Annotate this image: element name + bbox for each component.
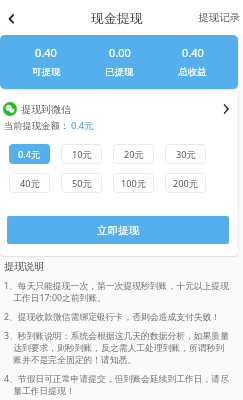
staticText: 提现说明 [4, 260, 44, 273]
staticText: 2、提现收款微信需绑定银行卡，否则会造成支付失败！ [4, 311, 221, 323]
staticText: 0.4元 [18, 148, 41, 161]
button[interactable]: 10元 [61, 144, 102, 164]
staticText: 0.4元 [71, 119, 94, 132]
staticText: 0.00 [109, 45, 131, 60]
staticText: 30元 [176, 148, 196, 161]
button[interactable]: 30元 [165, 144, 206, 164]
staticText: 立即提现 [97, 224, 139, 237]
button[interactable]: 0.4元 [9, 144, 50, 164]
button[interactable]: 立即提现 [7, 216, 229, 244]
staticText: 已提现 [105, 66, 134, 78]
staticText: 0.40 [182, 45, 204, 60]
staticText: 100元 [121, 177, 146, 190]
button[interactable]: 提现到微信 [0, 101, 238, 117]
staticText: 当前提现金额： [4, 120, 70, 132]
button[interactable]: 返回 [1, 8, 21, 28]
staticText: 可提现 [32, 66, 61, 78]
staticText: 总收益 [178, 66, 207, 78]
staticText: 现金提现 [91, 10, 143, 26]
staticText: 50元 [72, 177, 92, 190]
staticText: 1、每天只能提现一次，第一次提现秒到账，十元以上提现 工作日17:00之前到账。 [4, 280, 229, 304]
staticText: 20元 [124, 148, 144, 161]
button[interactable]: 提现记录 [192, 5, 243, 30]
staticText: 提现到微信 [21, 103, 71, 116]
staticText: 10元 [72, 148, 92, 161]
staticText: 4、节假日可正常申请提交，但到账会延续到工作日，请尽 量工作日提现！ [4, 373, 229, 397]
staticText: 0.40 [35, 45, 57, 60]
button[interactable]: 20元 [113, 144, 154, 164]
staticText: 200元 [173, 177, 198, 190]
button[interactable]: 100元 [113, 173, 154, 193]
button[interactable]: 40元 [9, 173, 50, 193]
staticText: 提现记录 [198, 11, 240, 24]
staticText: 40元 [20, 177, 40, 190]
staticText: 3、秒到账说明：系统会根据这几天的数据分析，如果质量 达到要求，则秒到账，反之需… [4, 330, 229, 366]
button[interactable]: 200元 [165, 173, 206, 193]
button[interactable]: 50元 [61, 173, 102, 193]
